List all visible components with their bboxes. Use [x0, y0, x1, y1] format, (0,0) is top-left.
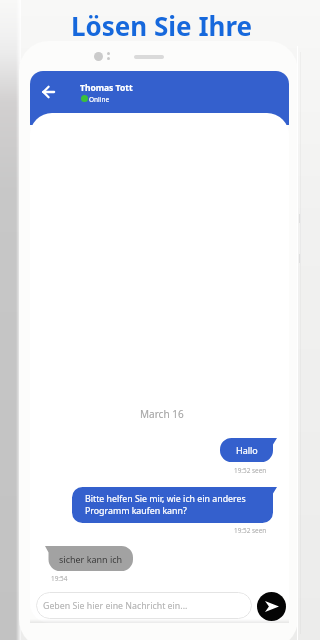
staticText: Bitte helfen Sie mir, wie ich ein andere…: [85, 493, 246, 517]
staticText: 19:52 seen: [234, 466, 267, 475]
staticText: Online: [89, 95, 110, 104]
staticText: Thomas Tott: [80, 82, 133, 94]
button[interactable]: Hallo: [220, 438, 277, 462]
staticText: Geben Sie hier eine Nachricht ein...: [43, 600, 188, 612]
staticText: sicher kann ich: [59, 553, 123, 565]
staticText: 19:52 seen: [234, 526, 267, 535]
button[interactable]: sicher kann ich: [45, 546, 133, 571]
button[interactable]: Geben Sie hier eine Nachricht ein...: [36, 592, 252, 619]
staticText: 19:54: [51, 574, 68, 583]
staticText: Lösen Sie Ihre: [71, 8, 253, 43]
staticText: Hallo: [236, 444, 258, 456]
staticText: March 16: [140, 407, 184, 421]
button[interactable]: Send: [257, 592, 286, 621]
button[interactable]: Bitte helfen Sie mir, wie ich ein andere…: [72, 487, 277, 523]
button[interactable]: Back: [38, 81, 60, 103]
